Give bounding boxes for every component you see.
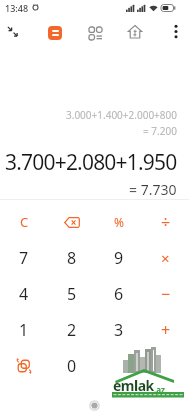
staticText: 3 (114, 319, 124, 341)
button[interactable]: 9 (95, 240, 142, 276)
button[interactable]: 4 (0, 276, 48, 312)
staticText: 9 (114, 247, 124, 269)
staticText: 1 (19, 319, 29, 341)
button[interactable]: 2 (48, 312, 95, 348)
staticText: 7 (19, 247, 29, 269)
button[interactable]: 3 (95, 312, 142, 348)
button[interactable]: 5 (48, 276, 95, 312)
staticText: emlak (113, 376, 154, 395)
button[interactable]: 6 (95, 276, 142, 312)
staticText: × (161, 248, 170, 268)
button[interactable] (168, 21, 184, 41)
button[interactable]: 1 (0, 312, 48, 348)
staticText: .az (154, 384, 165, 395)
staticText: C (20, 213, 29, 231)
button[interactable] (125, 22, 145, 42)
staticText: 0 (67, 355, 77, 377)
staticText: 3.700+2.080+1.950 (5, 148, 177, 176)
button[interactable] (85, 23, 105, 43)
button[interactable] (48, 26, 62, 40)
staticText: 6 (114, 283, 124, 305)
button[interactable] (48, 204, 95, 240)
button[interactable]: + (142, 312, 189, 348)
button[interactable]: 8 (48, 240, 95, 276)
staticText: ÷ (161, 211, 171, 233)
staticText: % (114, 214, 124, 230)
staticText: 13:48 (5, 2, 29, 14)
button[interactable] (95, 348, 142, 384)
staticText: − (161, 283, 171, 305)
button[interactable]: ÷ (142, 204, 189, 240)
button[interactable]: % (95, 204, 142, 240)
button[interactable]: 0 (48, 348, 95, 384)
button[interactable] (142, 348, 189, 384)
staticText: + (161, 319, 171, 341)
button[interactable]: C (0, 204, 48, 240)
button[interactable] (2, 21, 22, 41)
button[interactable] (0, 348, 48, 384)
button[interactable]: × (142, 240, 189, 276)
staticText: = 7.200 (143, 124, 177, 138)
button[interactable]: − (142, 276, 189, 312)
staticText: 5 (67, 283, 77, 305)
staticText: 2 (67, 319, 77, 341)
staticText: 8 (67, 247, 77, 269)
button[interactable]: 7 (0, 240, 48, 276)
staticText: 4 (19, 283, 29, 305)
staticText: 3.000+1.400+2.000+800 (66, 108, 177, 122)
staticText: = 7.730 (129, 180, 177, 196)
